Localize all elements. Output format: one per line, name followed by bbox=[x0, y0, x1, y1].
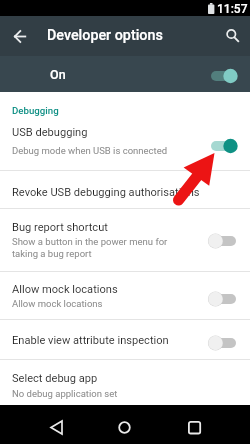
staticText: Developer options bbox=[47, 27, 163, 44]
staticText: 11:57 bbox=[217, 2, 248, 16]
button[interactable]: USB debugging bbox=[0, 120, 250, 170]
button[interactable]: Revoke USB debugging authorisations bbox=[0, 171, 250, 208]
staticText: Debug mode when USB is connected bbox=[12, 145, 168, 156]
staticText: Debugging bbox=[12, 105, 59, 116]
staticText: Select debug app bbox=[12, 372, 98, 385]
button[interactable]: Bug report shortcut bbox=[0, 209, 250, 271]
staticText: On bbox=[50, 67, 66, 82]
button[interactable] bbox=[111, 414, 137, 440]
staticText: Show a button in the power menu for taki… bbox=[12, 236, 168, 259]
button[interactable] bbox=[43, 414, 69, 440]
staticText: Revoke USB debugging authorisations bbox=[12, 186, 200, 199]
staticText: No debug application set bbox=[12, 388, 118, 399]
button[interactable] bbox=[181, 414, 207, 440]
staticText: Enable view attribute inspection bbox=[12, 334, 169, 347]
button[interactable] bbox=[220, 23, 246, 49]
button[interactable]: On bbox=[0, 56, 250, 92]
button[interactable] bbox=[6, 23, 33, 50]
staticText: USB debugging bbox=[12, 126, 88, 139]
staticText: Allow mock locations bbox=[12, 298, 103, 309]
button[interactable]: Allow mock locations bbox=[0, 272, 250, 319]
button[interactable]: Enable view attribute inspection bbox=[0, 320, 250, 359]
staticText: Allow mock locations bbox=[12, 283, 118, 296]
button[interactable]: Select debug app bbox=[0, 360, 250, 405]
staticText: Bug report shortcut bbox=[12, 221, 108, 234]
